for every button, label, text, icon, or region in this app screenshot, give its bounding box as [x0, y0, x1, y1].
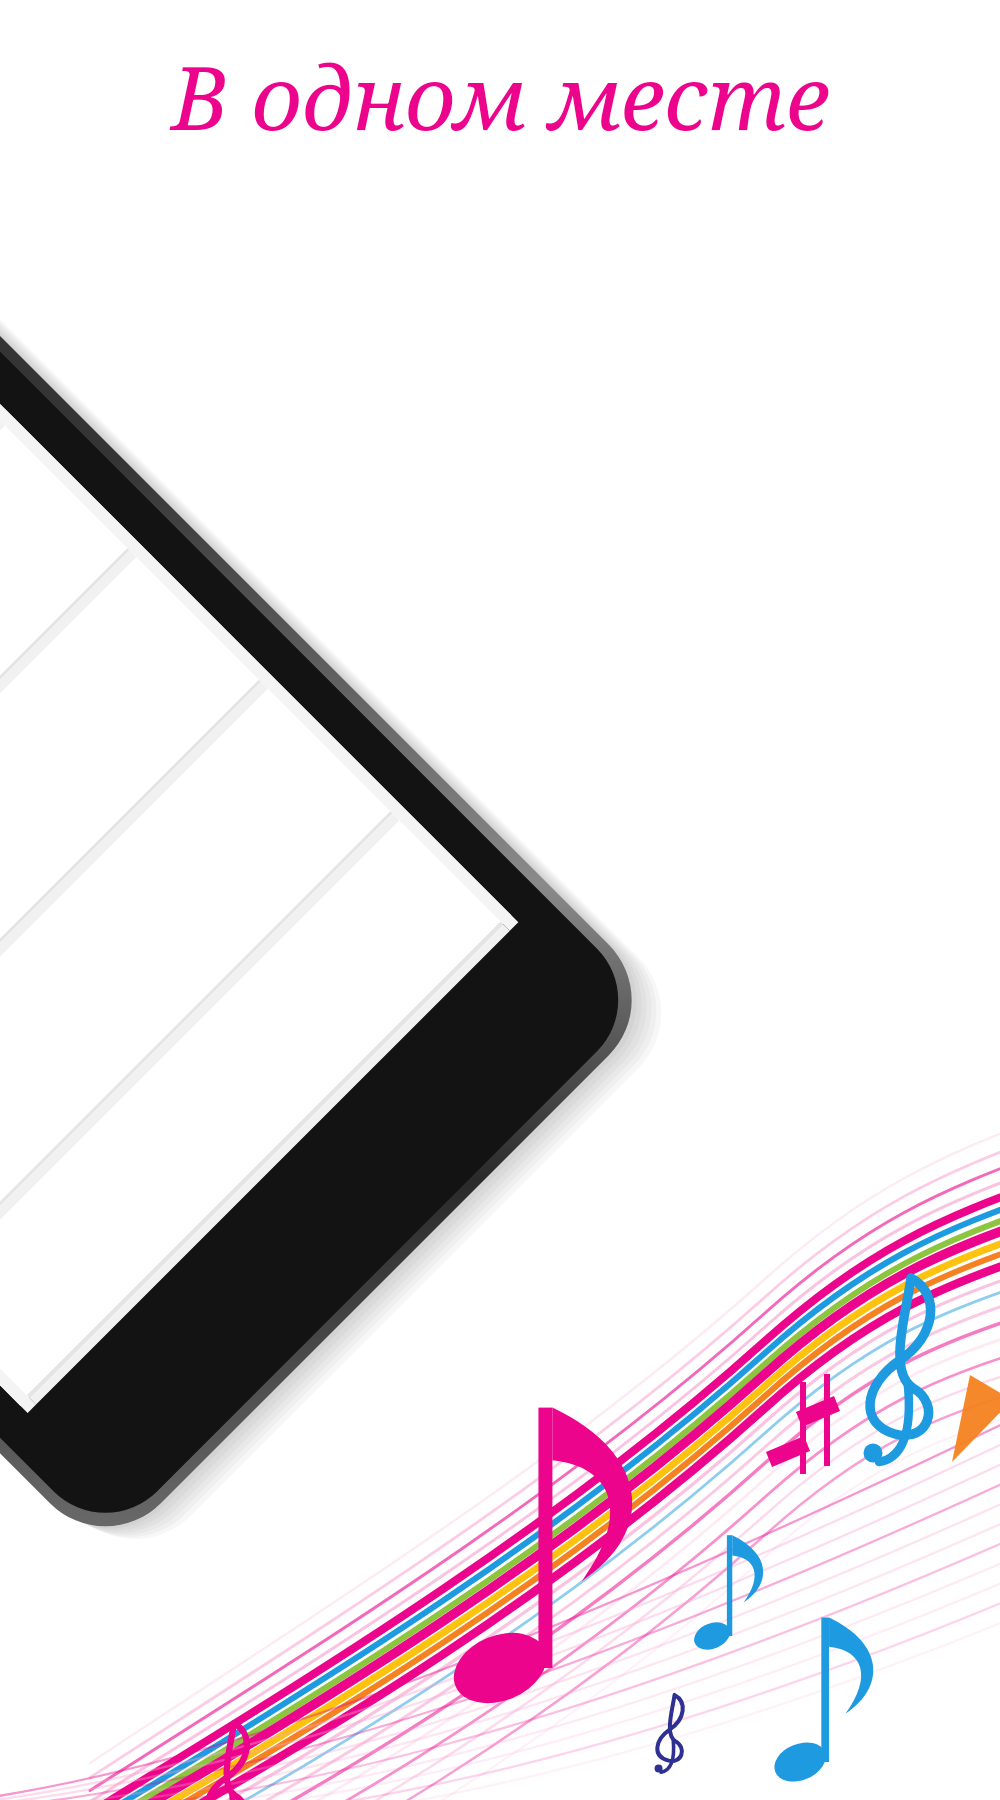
staticText: В одном месте [171, 36, 830, 156]
button[interactable]: В одном месте [0, 0, 1000, 175]
other: Screenshot of the song list app [0, 0, 1000, 1800]
